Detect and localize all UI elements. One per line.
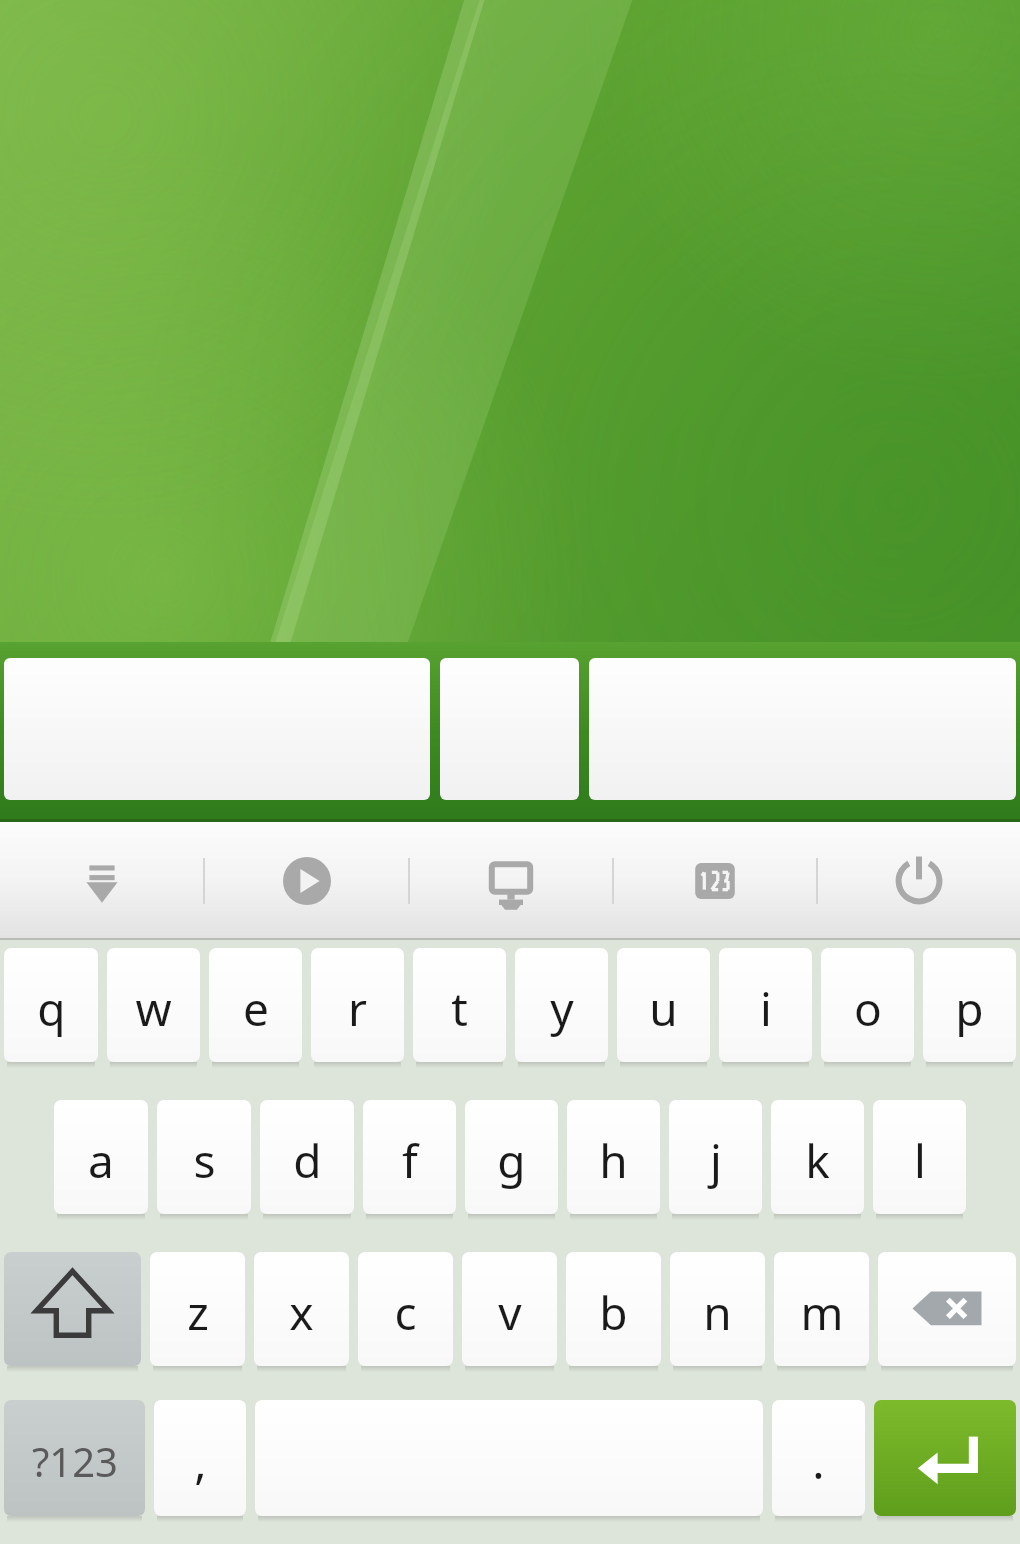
button[interactable] — [515, 948, 608, 1068]
button[interactable] — [260, 1100, 354, 1220]
button[interactable]: Numbers — [614, 822, 816, 940]
button[interactable] — [54, 1100, 148, 1220]
button[interactable] — [209, 948, 302, 1068]
staticText: f — [402, 1129, 418, 1192]
staticText: t — [451, 977, 468, 1040]
staticText: z — [187, 1281, 209, 1344]
button[interactable] — [771, 1100, 864, 1220]
button[interactable] — [772, 1400, 865, 1522]
button[interactable] — [413, 948, 506, 1068]
staticText: p — [955, 977, 984, 1040]
button[interactable] — [440, 658, 579, 800]
button[interactable] — [589, 658, 1016, 800]
button[interactable] — [774, 1252, 869, 1372]
staticText: v — [498, 1281, 522, 1344]
staticText: b — [599, 1281, 628, 1344]
button[interactable] — [465, 1100, 558, 1220]
staticText: j — [710, 1129, 722, 1192]
button[interactable] — [4, 948, 98, 1068]
button[interactable] — [617, 948, 710, 1068]
staticText: y — [550, 977, 574, 1040]
staticText: w — [135, 977, 172, 1040]
staticText: c — [394, 1281, 417, 1344]
button[interactable] — [311, 948, 404, 1068]
button[interactable]: Power — [818, 822, 1020, 940]
staticText: l — [914, 1129, 926, 1192]
button[interactable] — [154, 1400, 246, 1522]
button[interactable] — [670, 1252, 765, 1372]
staticText: m — [800, 1281, 844, 1344]
staticText: i — [760, 977, 772, 1040]
staticText: ?123 — [32, 1434, 118, 1488]
staticText: s — [193, 1129, 216, 1192]
staticText: , — [194, 1430, 207, 1493]
button[interactable]: Play — [205, 822, 408, 940]
button[interactable]: Hide keyboard — [0, 822, 203, 940]
button[interactable] — [157, 1100, 251, 1220]
button[interactable] — [462, 1252, 557, 1372]
staticText: g — [497, 1129, 526, 1192]
button[interactable] — [567, 1100, 660, 1220]
staticText: d — [293, 1129, 322, 1192]
staticText: r — [348, 977, 367, 1040]
staticText: o — [854, 977, 882, 1040]
staticText: a — [88, 1129, 114, 1192]
button[interactable] — [873, 1100, 966, 1220]
staticText: k — [805, 1129, 830, 1192]
button[interactable]: Shift — [4, 1252, 141, 1372]
button[interactable] — [107, 948, 200, 1068]
button[interactable]: Enter — [874, 1400, 1016, 1522]
button[interactable] — [255, 1400, 763, 1522]
button[interactable] — [4, 1400, 145, 1522]
button[interactable] — [4, 658, 430, 800]
button[interactable] — [719, 948, 812, 1068]
button[interactable] — [150, 1252, 245, 1372]
staticText: u — [649, 977, 678, 1040]
button[interactable] — [358, 1252, 453, 1372]
staticText: h — [599, 1129, 628, 1192]
staticText: q — [37, 977, 66, 1040]
button[interactable]: Backspace — [878, 1252, 1016, 1372]
button[interactable] — [669, 1100, 762, 1220]
button[interactable] — [254, 1252, 349, 1372]
button[interactable] — [363, 1100, 456, 1220]
button[interactable]: Display — [410, 822, 612, 940]
button[interactable] — [821, 948, 914, 1068]
button[interactable] — [566, 1252, 661, 1372]
staticText: e — [243, 977, 269, 1040]
staticText: . — [812, 1430, 825, 1493]
staticText: n — [703, 1281, 732, 1344]
staticText: x — [289, 1281, 314, 1344]
button[interactable] — [923, 948, 1016, 1068]
